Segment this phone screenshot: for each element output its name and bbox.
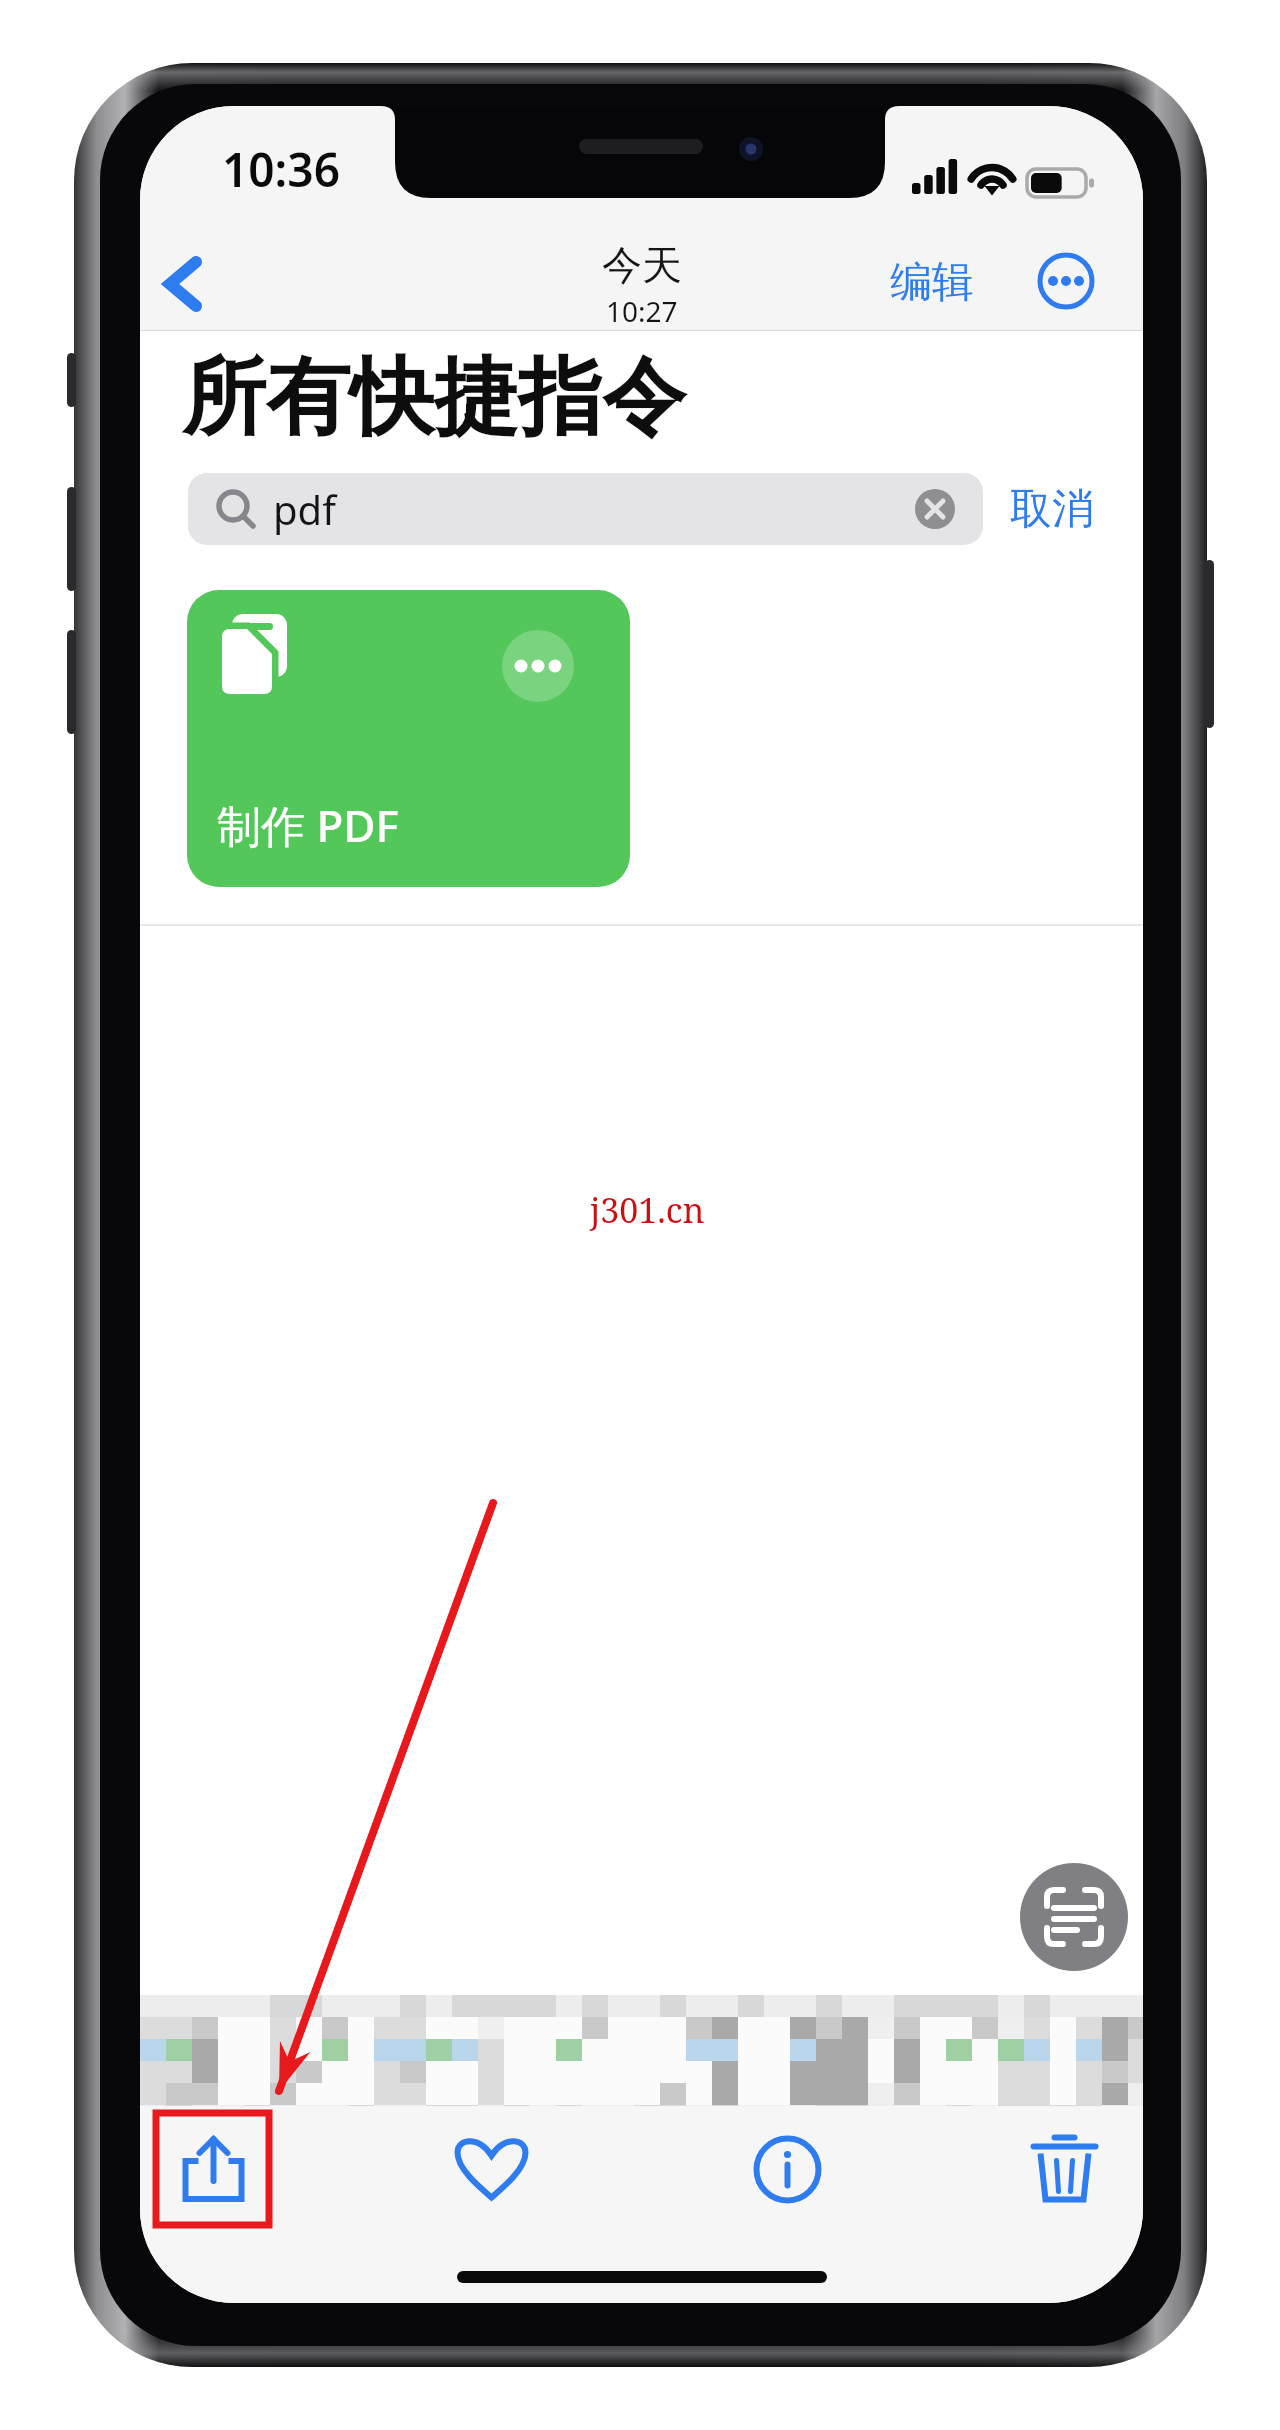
button[interactable]: More options — [1030, 245, 1102, 317]
button[interactable]: 编辑 — [878, 255, 986, 309]
staticText: j301.cn — [590, 1187, 705, 1233]
staticText: 制作 PDF — [217, 795, 399, 855]
staticText: pdf — [273, 482, 336, 536]
staticText: 10:27 — [606, 292, 678, 330]
button[interactable]: 制作 PDF — [187, 590, 630, 887]
staticText: 编辑 — [890, 256, 974, 309]
button[interactable]: Scan text — [1020, 1863, 1128, 1971]
button[interactable]: Details — [731, 2113, 844, 2226]
staticText: 今天 — [602, 240, 682, 290]
staticText: 取消 — [1010, 483, 1094, 536]
staticText: 所有快捷指令 — [182, 345, 686, 451]
button[interactable]: pdf — [188, 473, 983, 545]
button[interactable]: Add to favourites — [435, 2113, 548, 2226]
button[interactable]: Share — [157, 2113, 270, 2226]
button[interactable]: Delete — [1008, 2113, 1121, 2226]
button[interactable]: 取消 — [1002, 482, 1102, 536]
staticText: 10:36 — [222, 138, 340, 201]
button[interactable]: Back — [140, 236, 226, 322]
